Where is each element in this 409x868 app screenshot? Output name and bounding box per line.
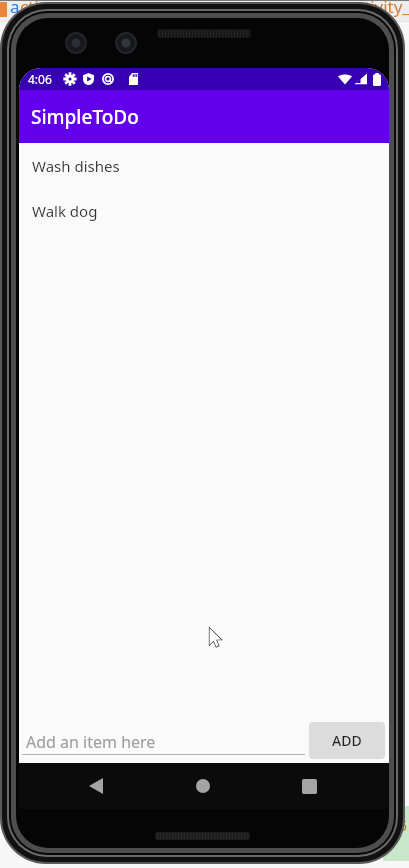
staticText: Add an item here (26, 731, 156, 753)
staticText: Wash dishes (32, 156, 120, 176)
button[interactable]: Wash dishes (19, 143, 389, 188)
staticText: ctiv (20, 0, 48, 18)
staticText: Walk dog (32, 201, 98, 221)
staticText: SimpleToDo (31, 104, 139, 130)
staticText: c (355, 0, 364, 18)
staticText: 55 (391, 816, 408, 835)
button[interactable]: ADD (309, 722, 385, 759)
button[interactable]: Back (73, 764, 119, 808)
staticText: tivity_ (364, 0, 409, 18)
staticText: a (10, 0, 20, 18)
button[interactable]: Recent apps (287, 764, 331, 808)
staticText: 4:06 (28, 71, 52, 87)
button[interactable]: Home (181, 764, 225, 808)
button[interactable]: Add an item here (22, 718, 305, 758)
staticText: ADD (332, 731, 362, 750)
button[interactable]: Walk dog (19, 188, 389, 233)
